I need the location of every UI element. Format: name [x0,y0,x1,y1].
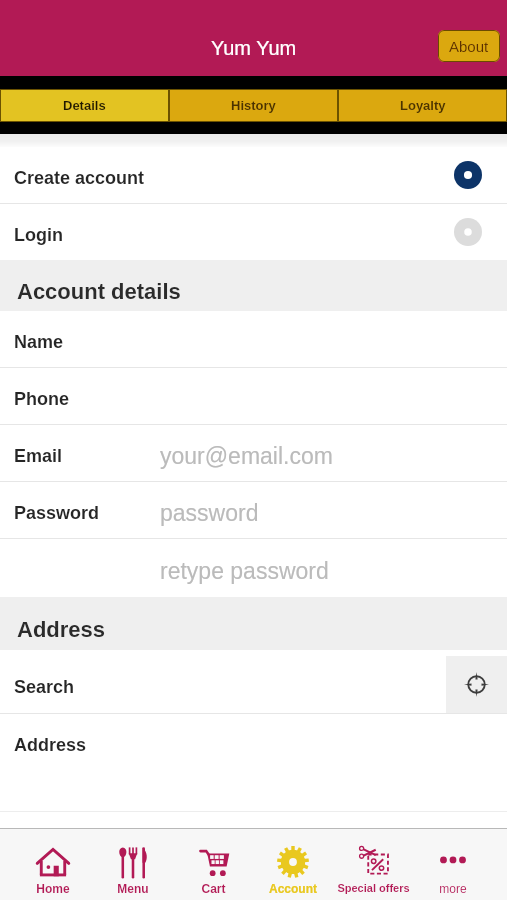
button[interactable]: Details [0,89,169,122]
button[interactable]: Menu [93,829,173,900]
staticText: Home [36,882,70,895]
button[interactable]: Create account [0,147,507,203]
button[interactable]: Password [0,482,507,538]
button[interactable]: retype password [0,539,507,597]
staticText: Account details [17,279,181,304]
staticText: password [160,500,259,526]
staticText: Email [14,446,63,466]
staticText: Cart [201,882,226,895]
staticText: Create account [14,168,145,188]
button[interactable]: Phone [0,368,507,424]
button[interactable]: Login [0,204,507,260]
staticText: Password [14,503,100,523]
button[interactable]: About [438,30,500,62]
staticText: more [439,882,467,895]
staticText: History [231,98,276,113]
staticText: Menu [117,882,149,895]
staticText: your@email.com [160,443,333,469]
staticText: Loyalty [400,98,446,113]
staticText: Name [14,332,64,352]
staticText: Details [63,98,106,113]
button[interactable]: Address [0,714,507,770]
button[interactable]: History [169,89,338,122]
staticText: Login [14,225,63,245]
staticText: Account [269,882,317,895]
button[interactable]: Email [0,425,507,481]
staticText: Phone [14,389,70,409]
button[interactable]: Special offers [333,829,413,900]
button[interactable]: Search [0,650,446,713]
staticText: Search [14,677,75,697]
staticText: Address [17,617,106,642]
staticText: retype password [160,558,329,584]
button[interactable]: Loyalty [338,89,507,122]
button[interactable]: Name [0,311,507,367]
staticText: Yum Yum [211,37,297,59]
button[interactable]: Account [253,829,333,900]
staticText: Address [14,735,87,755]
button[interactable]: more [413,829,493,900]
button[interactable]: Cart [173,829,253,900]
button[interactable]: Use my location [446,656,507,713]
staticText: About [449,38,489,55]
staticText: Special offers [337,882,410,894]
button[interactable]: Home [13,829,93,900]
